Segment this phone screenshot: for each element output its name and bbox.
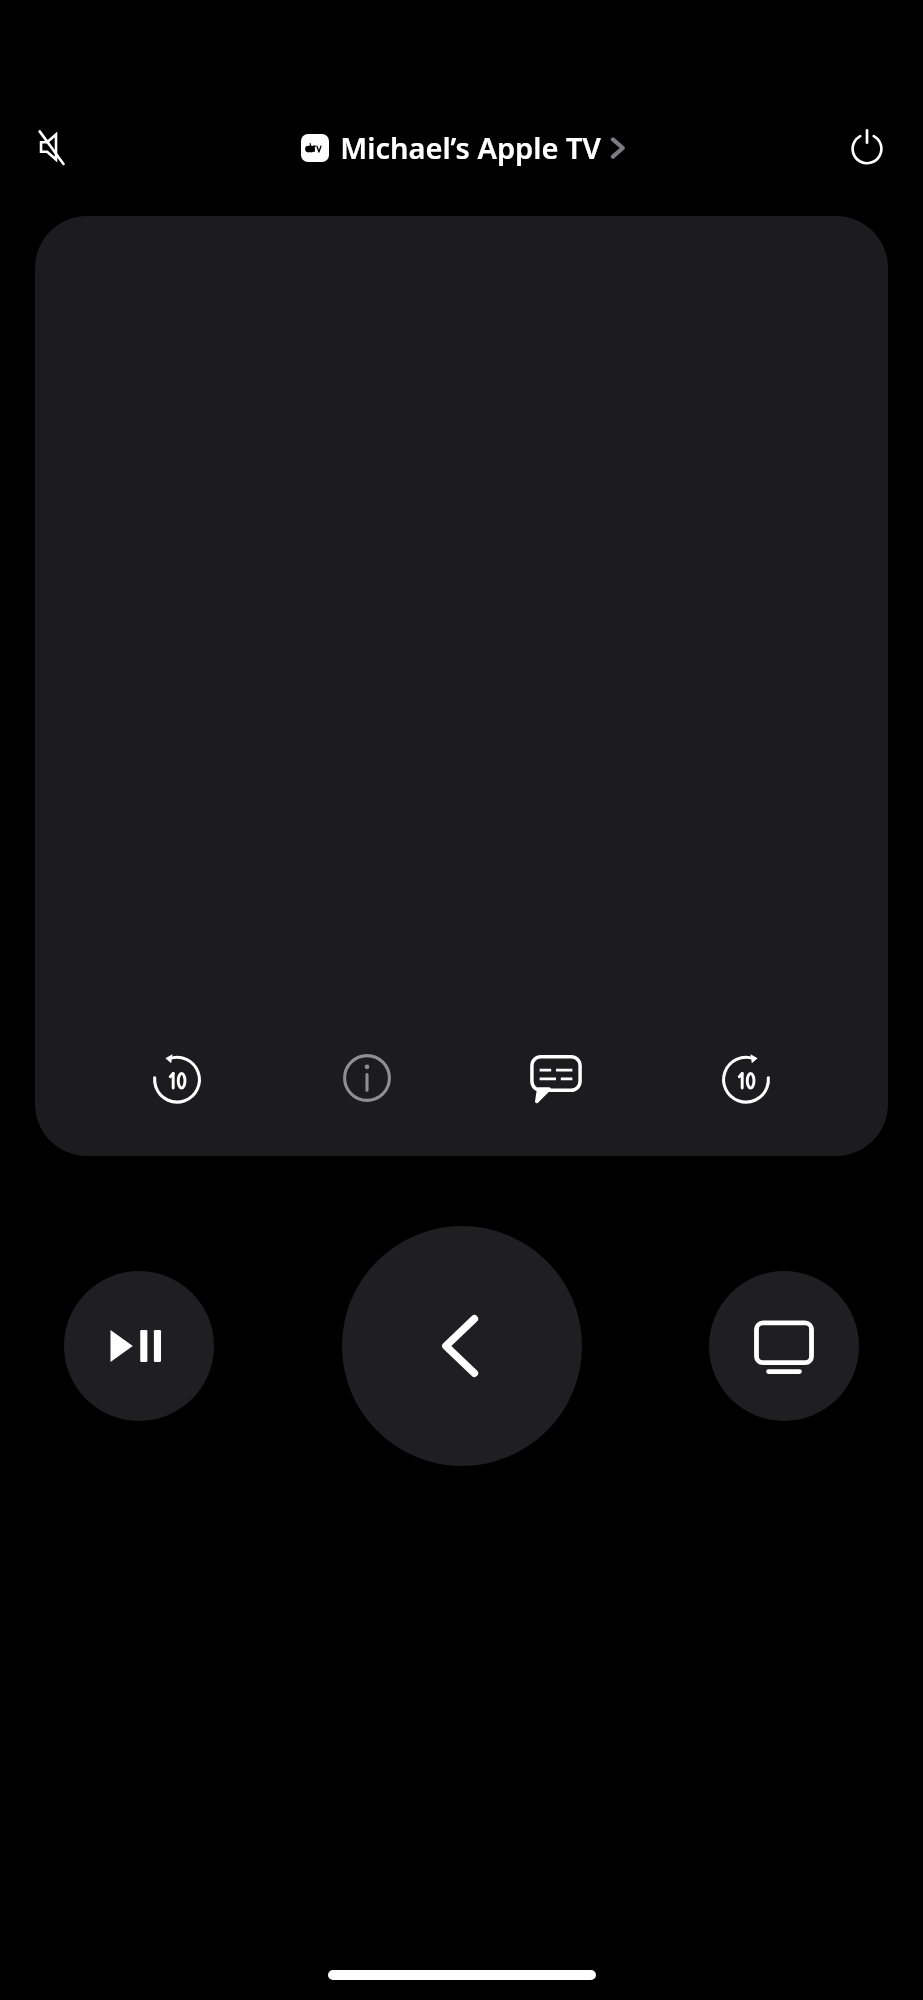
button[interactable]: Michael’s Apple TV — [110, 128, 817, 167]
button[interactable]: Mute — [24, 115, 88, 179]
button[interactable]: Touch surface — [35, 216, 888, 1156]
staticText: Michael’s Apple TV — [340, 128, 601, 167]
button[interactable]: Back — [342, 1226, 582, 1466]
button[interactable]: Power — [835, 115, 899, 179]
button[interactable]: Skip back 10 seconds — [129, 1030, 225, 1126]
button[interactable]: Info — [319, 1030, 415, 1126]
button[interactable]: Subtitles — [508, 1030, 604, 1126]
button[interactable]: Skip forward 10 seconds — [698, 1030, 794, 1126]
button[interactable]: TV app — [709, 1271, 859, 1421]
button[interactable]: Play or pause — [64, 1271, 214, 1421]
